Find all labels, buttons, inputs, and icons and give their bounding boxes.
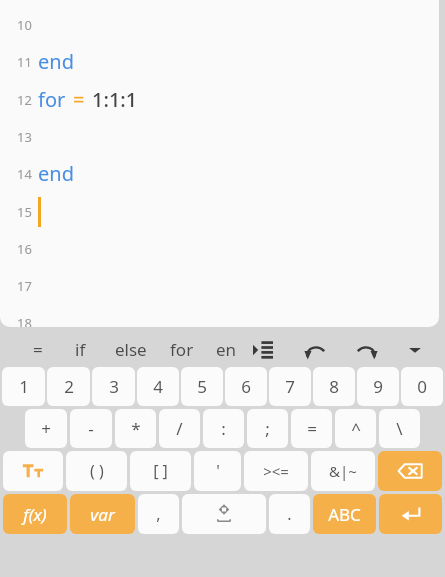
staticText: var: [90, 503, 115, 526]
staticText: .: [287, 503, 292, 525]
staticText: \: [396, 417, 403, 440]
button[interactable]: var: [70, 494, 135, 534]
staticText: f(x): [23, 503, 47, 526]
button[interactable]: More: [402, 337, 428, 363]
button[interactable]: ;: [247, 409, 288, 448]
button[interactable]: 9: [357, 367, 399, 406]
staticText: :: [221, 417, 226, 440]
staticText: ^: [351, 417, 361, 440]
button[interactable]: 6: [225, 367, 267, 406]
button[interactable]: Enter: [379, 494, 442, 534]
button[interactable]: 3: [92, 367, 135, 406]
button[interactable]: ABC: [313, 494, 376, 534]
staticText: 8: [329, 375, 339, 398]
staticText: 6: [241, 375, 251, 398]
staticText: 14: [17, 165, 32, 183]
staticText: for: [38, 86, 66, 113]
button[interactable]: Redo: [352, 337, 382, 367]
button[interactable]: 5: [181, 367, 223, 406]
button[interactable]: 7: [269, 367, 311, 406]
button[interactable]: 8: [313, 367, 355, 406]
staticText: ': [216, 460, 220, 482]
staticText: for: [170, 338, 194, 361]
button[interactable]: 4: [137, 367, 179, 406]
staticText: 5: [197, 375, 207, 398]
button[interactable]: ,: [138, 494, 179, 534]
staticText: 11: [17, 53, 32, 71]
button[interactable]: else: [107, 331, 155, 367]
button[interactable]: \: [379, 409, 420, 448]
button[interactable]: ': [194, 451, 241, 491]
staticText: 12: [17, 91, 32, 109]
button[interactable]: [ ]: [130, 451, 191, 491]
staticText: *: [131, 417, 141, 440]
staticText: 0: [417, 375, 427, 398]
button[interactable]: *: [115, 409, 156, 448]
staticText: /: [176, 417, 183, 440]
staticText: +: [41, 417, 51, 440]
staticText: -: [88, 417, 94, 440]
staticText: =: [307, 417, 317, 440]
staticText: 3: [109, 375, 119, 398]
staticText: 15: [17, 203, 32, 221]
staticText: 7: [285, 375, 295, 398]
staticText: ABC: [328, 503, 361, 526]
button[interactable]: -: [70, 409, 112, 448]
staticText: [ ]: [153, 460, 168, 482]
staticText: end: [38, 48, 74, 75]
staticText: ;: [265, 417, 270, 440]
staticText: =: [73, 86, 85, 113]
staticText: end: [38, 160, 74, 187]
staticText: &|~: [329, 461, 357, 481]
button[interactable]: if: [68, 331, 92, 367]
button[interactable]: for: [163, 331, 201, 367]
button[interactable]: :: [203, 409, 244, 448]
button[interactable]: =: [291, 409, 332, 448]
staticText: if: [75, 338, 86, 361]
button[interactable]: /: [159, 409, 200, 448]
button[interactable]: en: [209, 331, 243, 367]
button[interactable]: ( ): [66, 451, 127, 491]
button[interactable]: Backspace: [378, 451, 442, 491]
staticText: 4: [153, 375, 163, 398]
button[interactable]: 2: [47, 367, 90, 406]
staticText: 16: [17, 240, 32, 258]
button[interactable]: ><=: [244, 451, 308, 491]
staticText: =: [33, 338, 43, 361]
button[interactable]: Space: [182, 494, 266, 534]
button[interactable]: .: [269, 494, 310, 534]
staticText: 13: [17, 128, 32, 146]
staticText: 10: [17, 16, 32, 34]
staticText: ,: [156, 503, 161, 525]
button[interactable]: &|~: [311, 451, 375, 491]
button[interactable]: ^: [335, 409, 376, 448]
staticText: 1:1:1: [92, 86, 138, 113]
staticText: 1: [19, 375, 29, 398]
staticText: 17: [17, 277, 32, 295]
staticText: 2: [64, 375, 74, 398]
staticText: en: [216, 338, 237, 361]
staticText: else: [115, 338, 147, 361]
staticText: ><=: [263, 461, 289, 481]
staticText: 9: [373, 375, 383, 398]
button[interactable]: f(x): [3, 494, 67, 534]
button[interactable]: Indent: [250, 337, 276, 363]
button[interactable]: Text size: [3, 451, 63, 491]
button[interactable]: Undo: [300, 337, 330, 367]
button[interactable]: 1: [2, 367, 45, 406]
button[interactable]: 0: [401, 367, 443, 406]
button[interactable]: +: [25, 409, 67, 448]
staticText: ( ): [90, 460, 104, 482]
button[interactable]: =: [26, 331, 50, 367]
staticText: 18: [17, 314, 32, 327]
